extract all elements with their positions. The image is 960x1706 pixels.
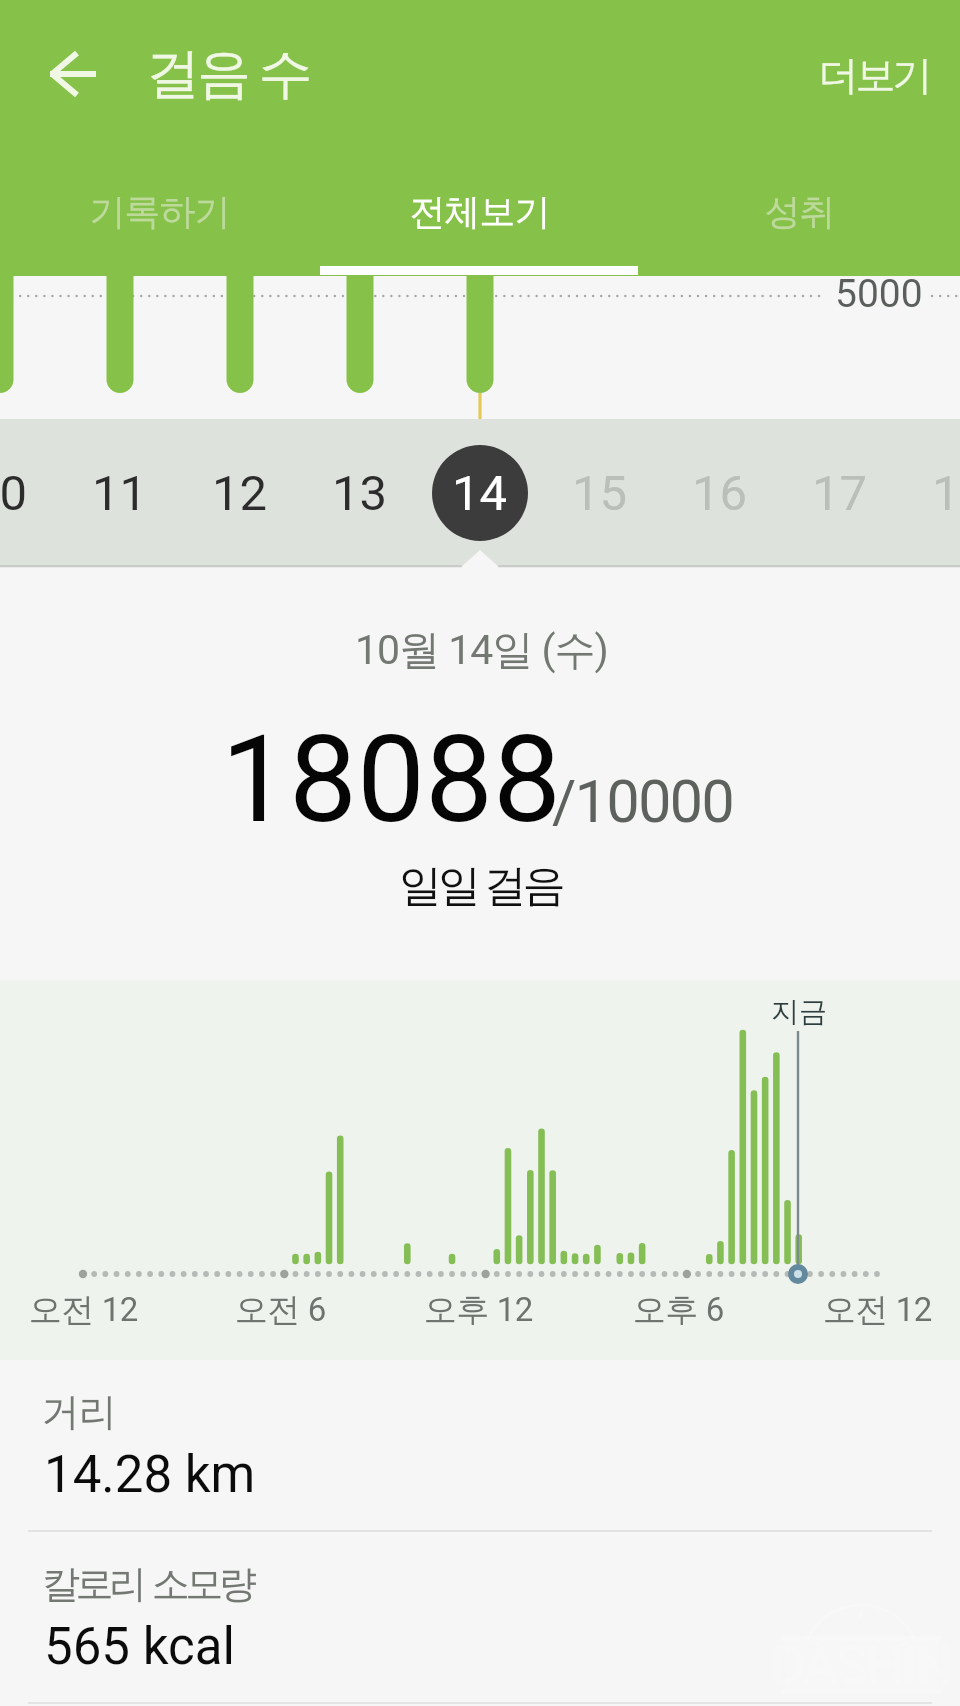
- staticText: 10: [0, 465, 28, 522]
- staticText: 13: [332, 465, 388, 522]
- button[interactable]: 기록하기: [0, 158, 320, 264]
- button[interactable]: 13: [300, 419, 420, 567]
- staticText: 일일 걸음: [399, 859, 562, 913]
- button[interactable]: 15: [540, 419, 660, 567]
- staticText: 18: [932, 465, 960, 522]
- button[interactable]: 10: [0, 419, 60, 567]
- staticText: 더보기: [820, 50, 931, 100]
- staticText: 12: [212, 465, 268, 522]
- staticText: 18088: [221, 709, 562, 851]
- staticText: 14: [452, 465, 508, 522]
- staticText: 14.28 km: [44, 1445, 256, 1505]
- staticText: 걸음 수: [146, 40, 310, 108]
- button[interactable]: 12: [180, 419, 300, 567]
- staticText: 5000: [835, 271, 923, 317]
- staticText: 오전 6: [235, 1289, 326, 1331]
- staticText: /10000: [552, 767, 734, 836]
- button[interactable]: 16: [660, 419, 780, 567]
- button[interactable]: 17: [780, 419, 900, 567]
- button[interactable]: 거리: [0, 1360, 960, 1532]
- staticText: 11: [92, 465, 148, 522]
- staticText: 10월 14일 (수): [355, 625, 608, 677]
- staticText: 오전 12: [823, 1289, 932, 1331]
- button[interactable]: Back: [28, 32, 118, 118]
- button[interactable]: 더보기: [820, 30, 960, 120]
- button[interactable]: 칼로리 소모량: [0, 1532, 960, 1704]
- staticText: 15: [572, 465, 628, 522]
- button[interactable]: 성취: [640, 158, 960, 264]
- staticText: 거리: [42, 1388, 116, 1436]
- button[interactable]: 14: [420, 419, 540, 567]
- staticText: 기록하기: [90, 189, 230, 234]
- staticText: 17: [812, 465, 868, 522]
- button[interactable]: 전체보기: [320, 158, 640, 264]
- staticText: 565 kcal: [44, 1617, 235, 1677]
- staticText: 오후 6: [633, 1289, 724, 1331]
- staticText: 16: [692, 465, 748, 522]
- button[interactable]: 11: [60, 419, 180, 567]
- button[interactable]: 18: [900, 419, 960, 567]
- staticText: 오후 12: [424, 1289, 533, 1331]
- staticText: 성취: [765, 189, 835, 234]
- staticText: 전체보기: [410, 189, 550, 234]
- staticText: 지금: [771, 994, 827, 1029]
- staticText: 칼로리 소모량: [42, 1560, 253, 1608]
- staticText: 오전 12: [29, 1289, 138, 1331]
